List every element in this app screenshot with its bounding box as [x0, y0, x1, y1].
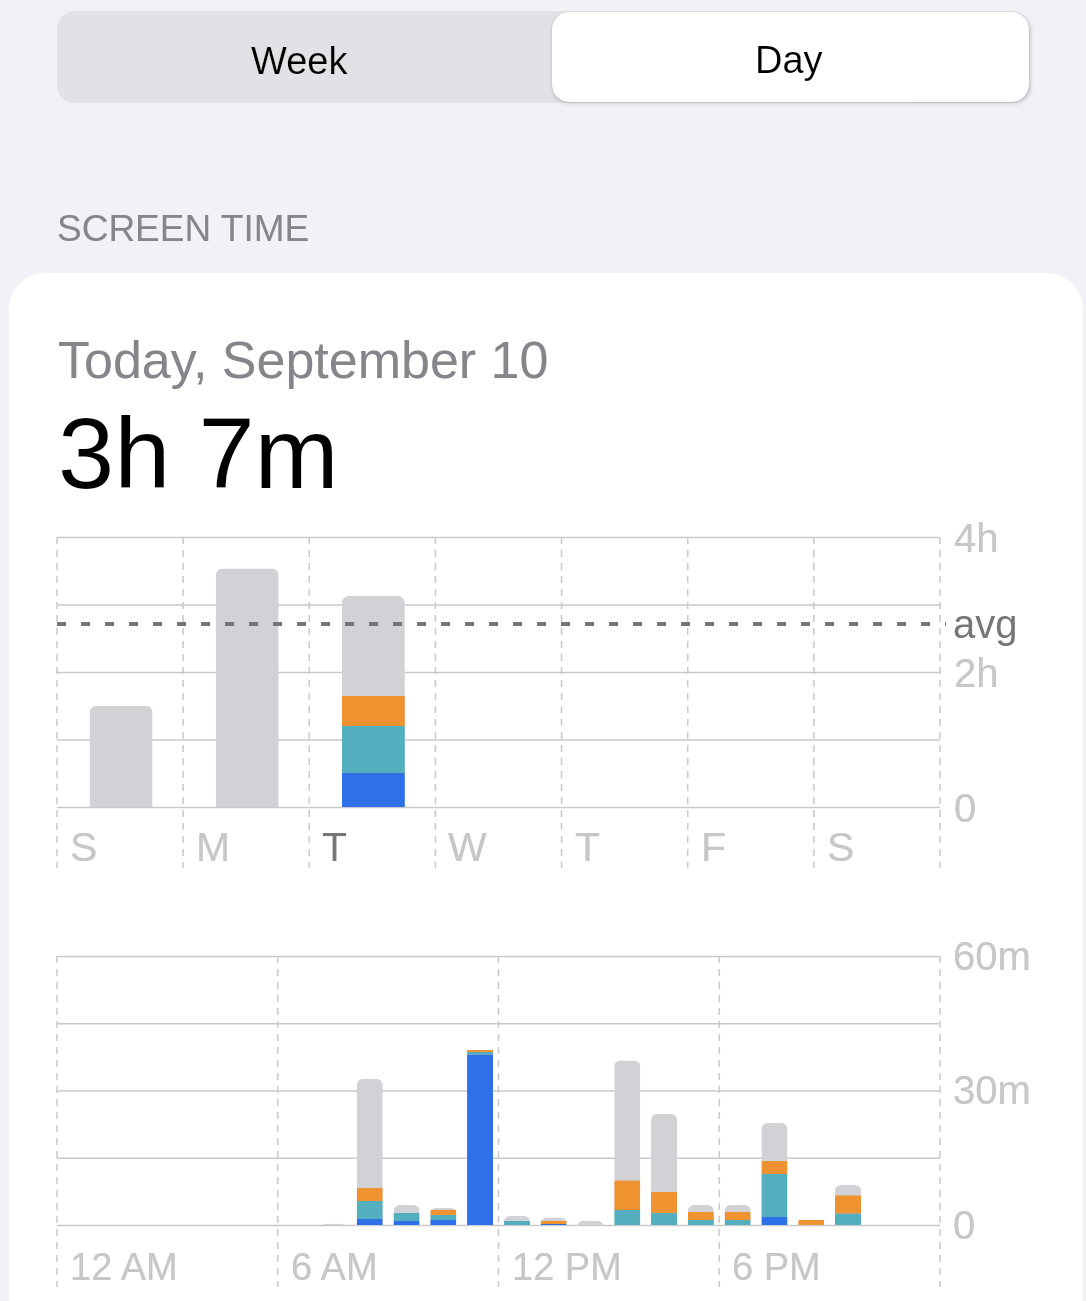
staticText: T [322, 824, 348, 870]
button[interactable]: Day [552, 12, 1029, 102]
staticText: SCREEN TIME [57, 208, 310, 249]
staticText: T [575, 824, 601, 870]
staticText: 3h 7m [58, 397, 339, 510]
staticText: W [448, 824, 487, 870]
staticText: S [827, 824, 855, 870]
staticText: F [701, 824, 727, 870]
staticText: 0 [954, 786, 977, 831]
staticText: S [70, 824, 98, 870]
staticText: avg [953, 602, 1018, 647]
staticText: 6 PM [732, 1246, 821, 1288]
staticText: 12 PM [512, 1246, 622, 1288]
staticText: 4h [954, 516, 999, 561]
staticText: 30m [953, 1068, 1031, 1113]
staticText: 0 [953, 1203, 976, 1248]
staticText: 6 AM [291, 1246, 378, 1288]
button[interactable]: Today, September 10 [9, 273, 1083, 1301]
staticText: M [196, 824, 231, 870]
button[interactable]: Week [57, 11, 552, 103]
staticText: Day [755, 39, 823, 81]
staticText: Today, September 10 [58, 331, 549, 389]
staticText: 2h [954, 651, 999, 696]
staticText: Week [251, 40, 348, 82]
staticText: 12 AM [70, 1246, 178, 1288]
staticText: 60m [953, 934, 1031, 979]
